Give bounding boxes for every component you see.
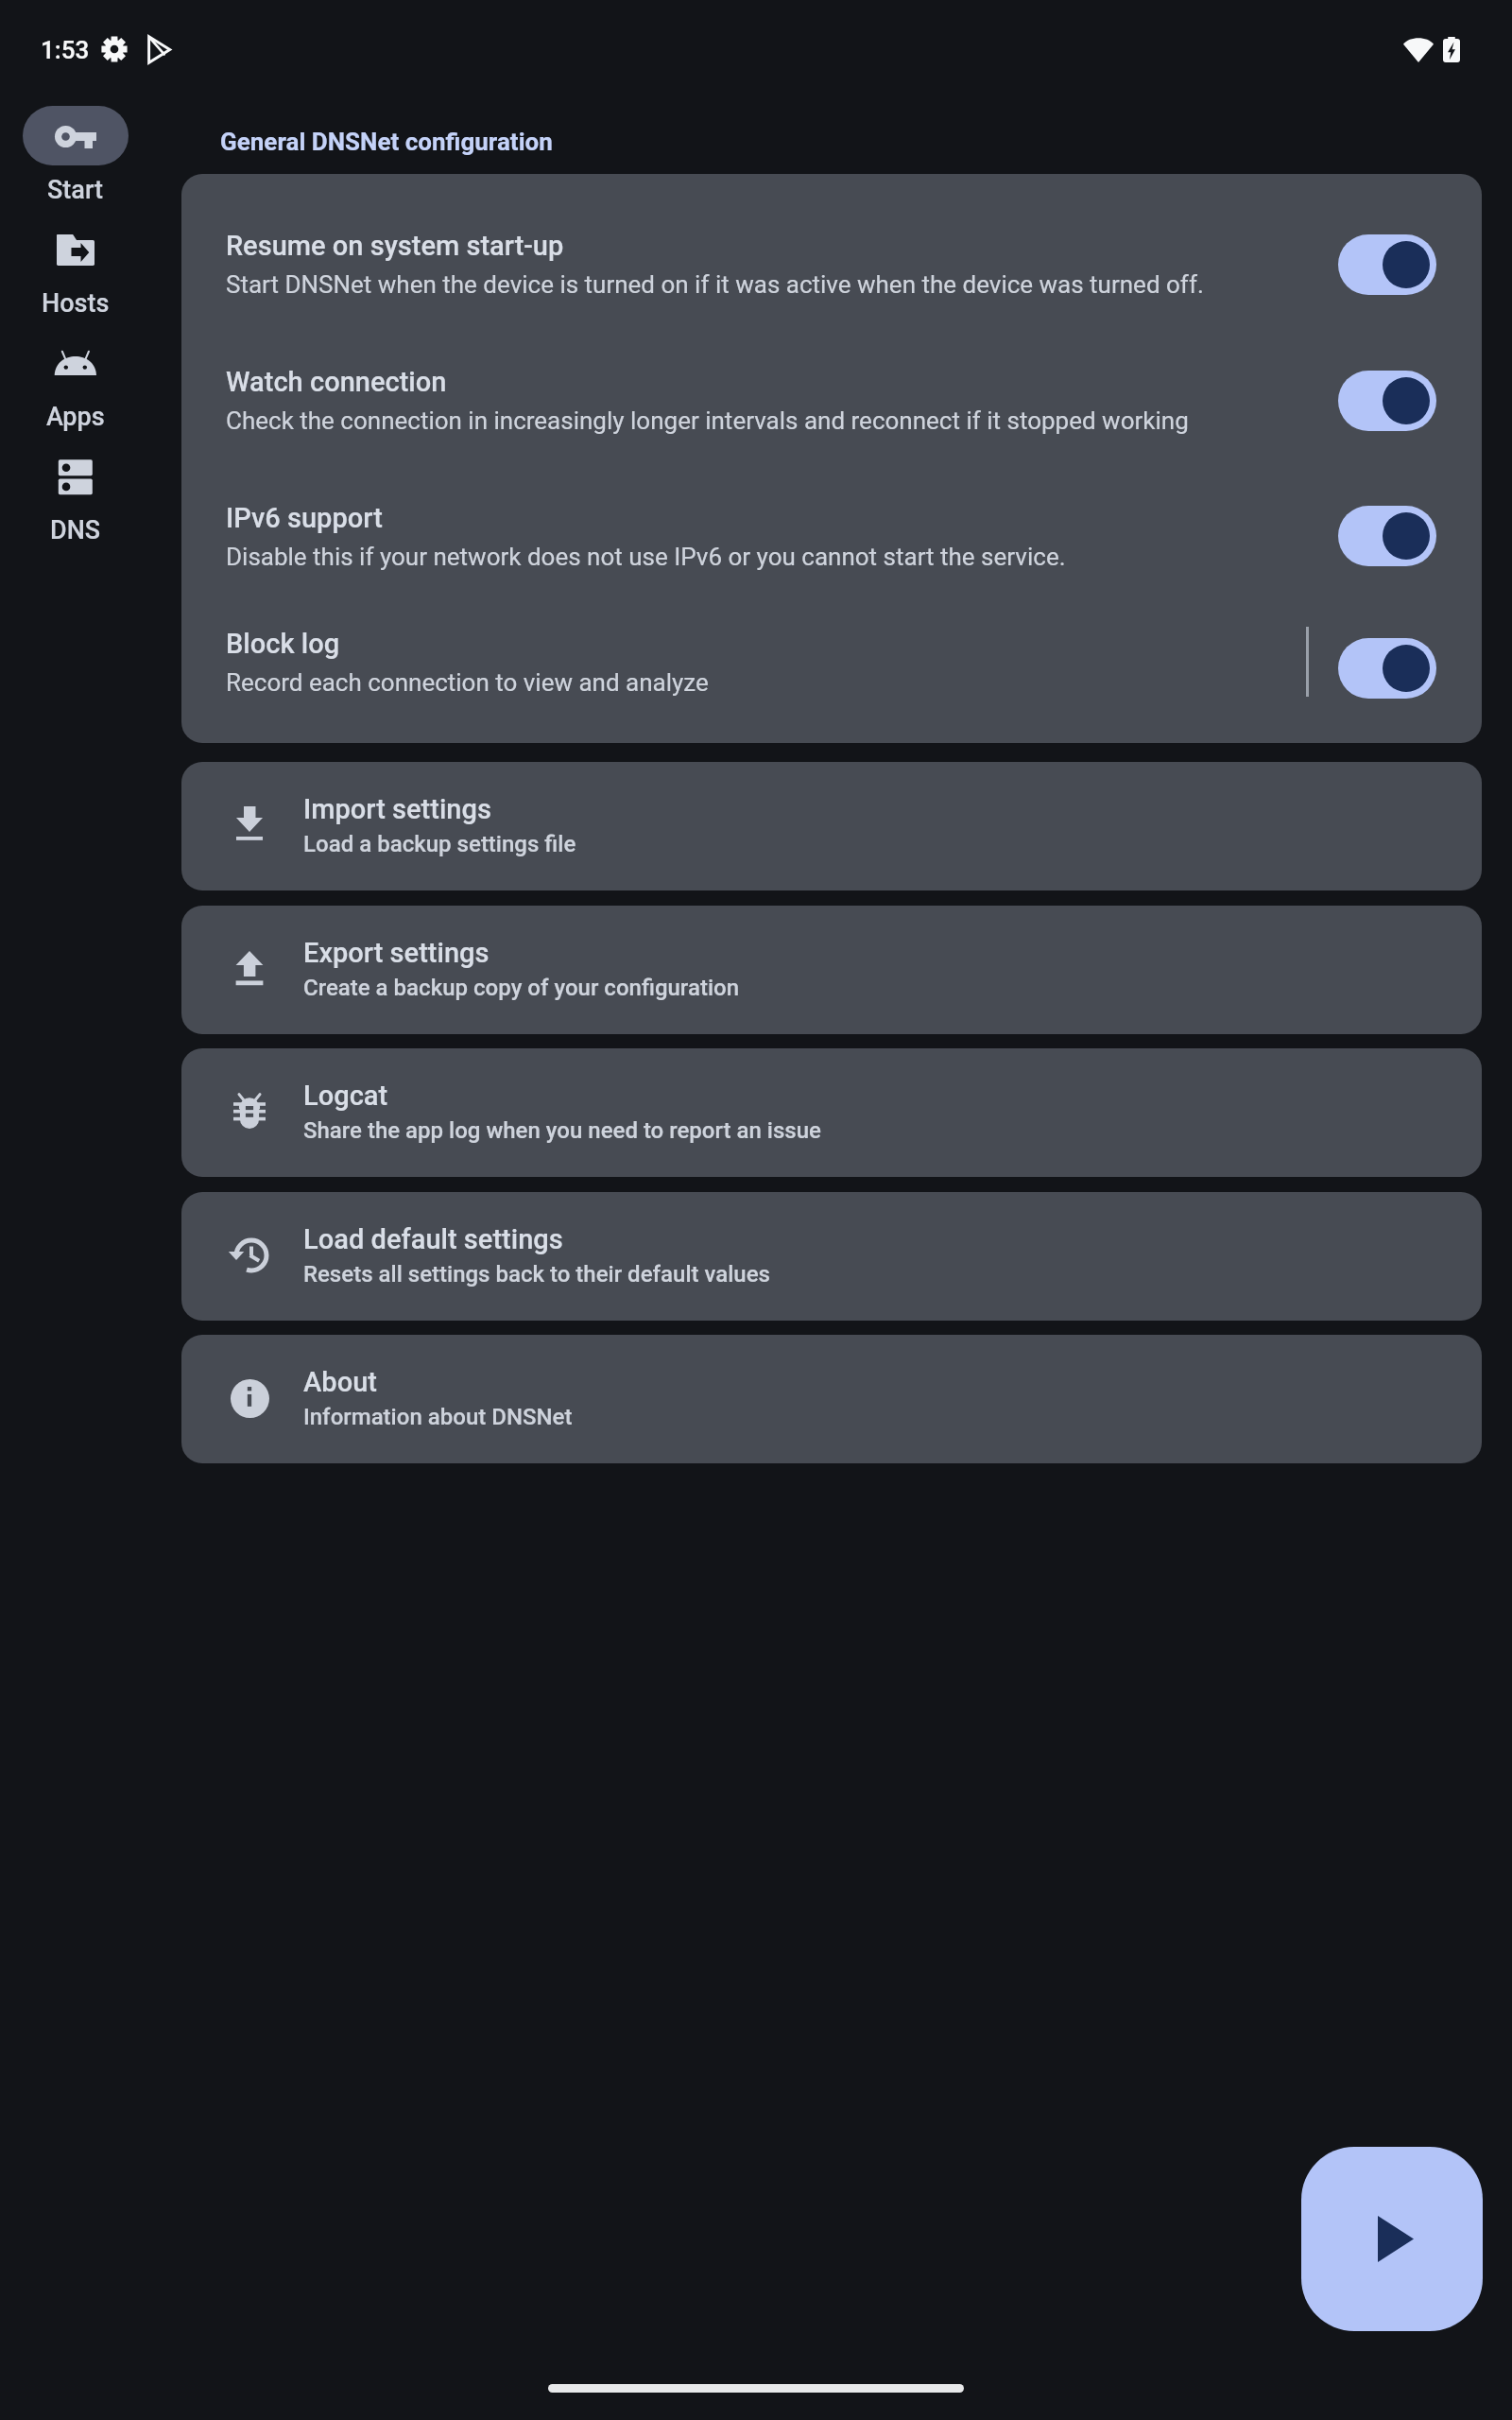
button[interactable]: About: [181, 1335, 1482, 1463]
button[interactable]: Toggle Block log: [1338, 638, 1436, 699]
button[interactable]: DNS: [23, 446, 129, 545]
button[interactable]: Export settings: [181, 906, 1482, 1034]
staticText: Share the app log when you need to repor…: [303, 1117, 821, 1144]
staticText: Start: [47, 175, 104, 205]
button[interactable]: Watch connection: [181, 334, 1482, 468]
button[interactable]: Start DNSNet: [1301, 2147, 1483, 2331]
button[interactable]: IPv6 support: [181, 469, 1482, 603]
staticText: Logcat: [303, 1080, 388, 1112]
button[interactable]: Hosts: [23, 219, 129, 319]
staticText: Export settings: [303, 937, 490, 969]
staticText: Load a backup settings file: [303, 831, 576, 857]
button[interactable]: Start: [23, 106, 129, 205]
staticText: Information about DNSNet: [303, 1404, 573, 1430]
staticText: General DNSNet configuration: [220, 128, 553, 156]
button[interactable]: Resume on system start-up: [181, 198, 1482, 332]
staticText: IPv6 support: [226, 502, 383, 534]
staticText: Apps: [46, 402, 105, 432]
button[interactable]: Toggle Watch connection: [1338, 371, 1436, 431]
staticText: Hosts: [42, 288, 110, 319]
staticText: Create a backup copy of your configurati…: [303, 975, 740, 1001]
button[interactable]: Load default settings: [181, 1192, 1482, 1321]
button[interactable]: Toggle IPv6 support: [1338, 506, 1436, 566]
staticText: Watch connection: [226, 366, 447, 398]
button[interactable]: Block log: [181, 601, 1482, 735]
button[interactable]: Import settings: [181, 762, 1482, 890]
staticText: 1:53: [41, 36, 90, 64]
staticText: Check the connection in increasingly lon…: [226, 406, 1189, 435]
staticText: Disable this if your network does not us…: [226, 543, 1066, 571]
staticText: DNS: [50, 515, 101, 545]
staticText: About: [303, 1366, 377, 1398]
staticText: Import settings: [303, 793, 491, 825]
staticText: Start DNSNet when the device is turned o…: [226, 270, 1204, 299]
button[interactable]: Logcat: [181, 1048, 1482, 1177]
staticText: Load default settings: [303, 1223, 563, 1255]
staticText: Block log: [226, 628, 340, 660]
staticText: Resets all settings back to their defaul…: [303, 1261, 770, 1288]
button[interactable]: Apps: [23, 333, 129, 432]
button[interactable]: Toggle Resume on system start-up: [1338, 234, 1436, 295]
staticText: Record each connection to view and analy…: [226, 668, 709, 697]
staticText: Resume on system start-up: [226, 230, 564, 262]
